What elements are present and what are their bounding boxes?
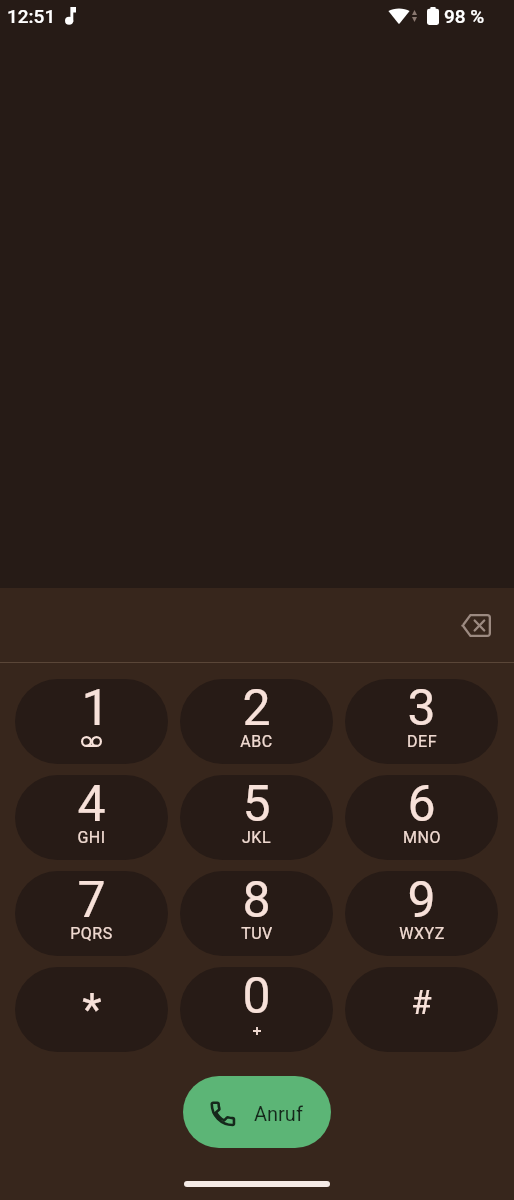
staticText: 2 [242,679,271,738]
button[interactable]: 0 [180,967,333,1052]
staticText: 1 [81,679,110,738]
staticText: # [411,983,432,1022]
staticText: 98 % [444,5,485,27]
button[interactable]: 2 [180,679,333,764]
staticText: Anruf [254,1102,303,1124]
staticText: 5 [242,775,271,834]
staticText: TUV [241,924,273,943]
button[interactable]: 1 [15,679,168,764]
button[interactable]: 8 [180,871,333,956]
button[interactable]: 5 [180,775,333,860]
staticText: 9 [407,871,436,930]
button[interactable]: 7 [15,871,168,956]
staticText: ABC [240,732,273,751]
button[interactable]: 4 [15,775,168,860]
staticText: MNO [403,828,441,847]
staticText: * [82,983,102,1036]
staticText: 0 [242,967,271,1026]
staticText: PQRS [70,924,113,943]
staticText: JKL [242,828,271,847]
staticText: DEF [407,732,437,751]
staticText: 12:51 [7,5,56,27]
button[interactable]: * [15,967,168,1052]
button[interactable]: # [345,967,498,1052]
staticText: 3 [407,679,436,738]
button[interactable]: Anruf [183,1076,331,1148]
staticText: 8 [242,871,271,930]
staticText: 6 [407,775,436,834]
button[interactable]: Delete last digit [452,601,500,649]
staticText: 4 [77,775,106,834]
staticText: WXYZ [399,924,445,943]
button[interactable]: 9 [345,871,498,956]
staticText: GHI [77,828,106,847]
button[interactable]: 3 [345,679,498,764]
staticText: 7 [77,871,106,930]
button[interactable]: 6 [345,775,498,860]
